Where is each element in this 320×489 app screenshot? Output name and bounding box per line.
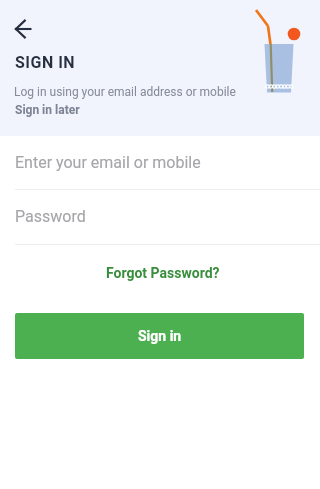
staticText: Sign in [138, 328, 182, 344]
button[interactable]: Sign in [15, 313, 304, 359]
staticText: Log in using your email address or mobil… [14, 85, 236, 99]
button[interactable]: Password [0, 204, 320, 244]
staticText: Sign in later [15, 103, 80, 117]
staticText: Password [15, 207, 86, 226]
staticText: SIGN IN [15, 53, 76, 72]
staticText: Enter your email or mobile [15, 153, 201, 172]
staticText: Forgot Password? [106, 265, 220, 281]
button[interactable]: Sign in later [15, 103, 80, 117]
button[interactable]: Enter your email or mobile [0, 150, 320, 190]
button[interactable]: Forgot Password? [3, 265, 320, 281]
button[interactable] [8, 13, 40, 45]
